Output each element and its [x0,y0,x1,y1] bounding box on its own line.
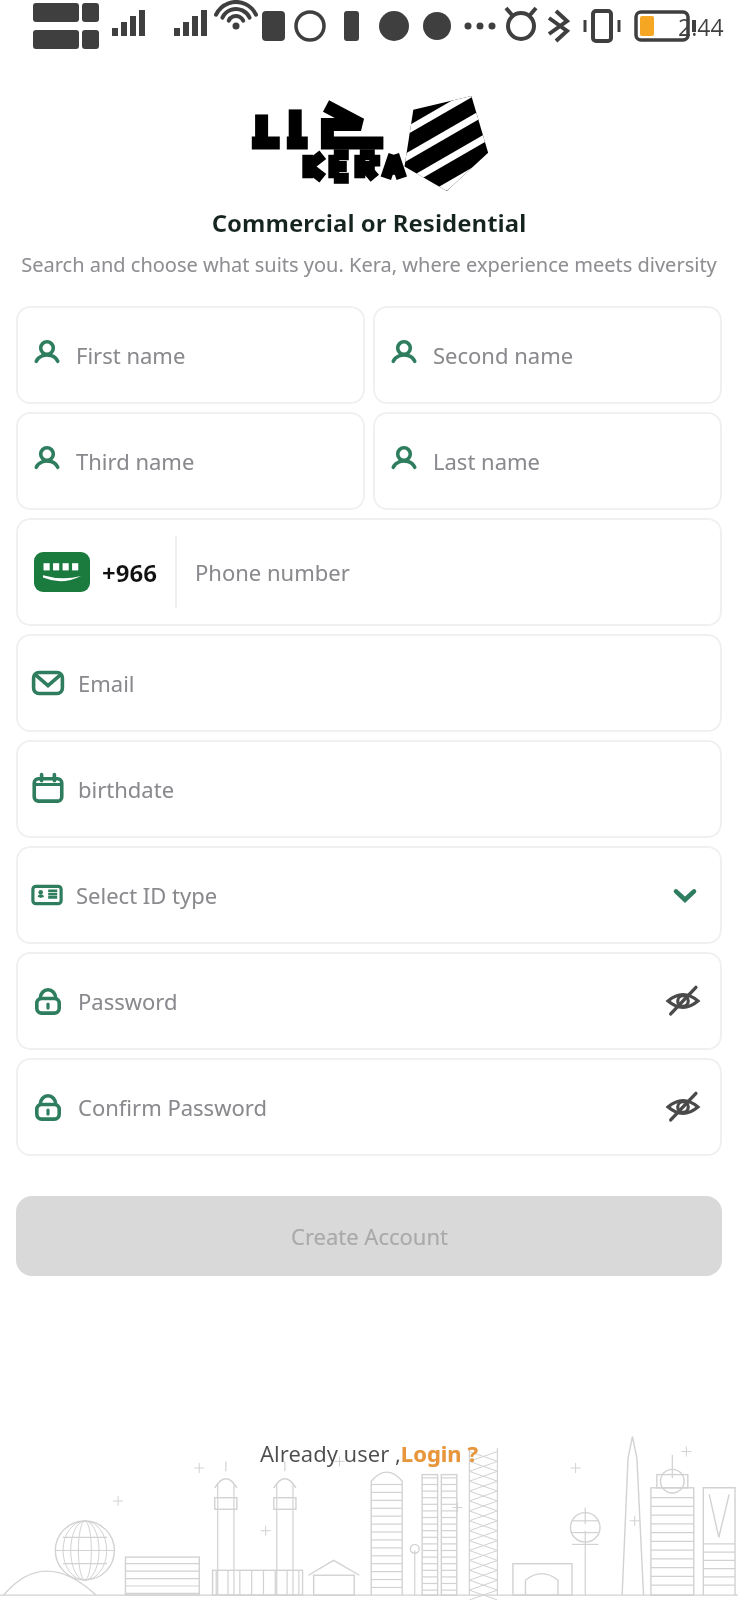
staticText: Last name [433,446,706,476]
button[interactable]: Open ID type list [664,874,706,916]
staticText: Phone number [195,557,350,587]
staticText: birthdate [78,774,706,804]
staticText: Email [78,668,706,698]
staticText: Search and choose what suits you. Kera, … [18,251,720,278]
button[interactable]: Show confirm password [660,1084,706,1130]
staticText: Select ID type [76,880,664,910]
staticText: Already user ,Login ? [260,1438,478,1468]
staticText: Commercial or Residential [0,206,738,239]
button[interactable]: First name [16,306,365,404]
staticText: Create Account [291,1221,448,1251]
button[interactable]: Confirm Password [16,1058,722,1156]
button[interactable]: Already user ,Login ? [250,1434,488,1472]
button[interactable]: Password [16,952,722,1050]
button[interactable]: birthdate [16,740,722,838]
button[interactable]: Select country code [16,518,175,626]
button[interactable]: Select ID type [16,846,722,944]
staticText: Password [78,986,660,1016]
button[interactable]: Third name [16,412,365,510]
staticText: Third name [76,446,349,476]
button[interactable]: Email [16,634,722,732]
button[interactable]: Select country code [16,518,722,626]
staticText: First name [76,340,349,370]
staticText: Second name [433,340,706,370]
staticText: +966 [102,556,157,589]
button[interactable]: Second name [373,306,722,404]
button[interactable]: Last name [373,412,722,510]
staticText: Confirm Password [78,1092,660,1122]
button[interactable]: Show password [660,978,706,1024]
button[interactable]: Create Account [16,1196,722,1276]
staticText: 2:44 [678,11,724,42]
